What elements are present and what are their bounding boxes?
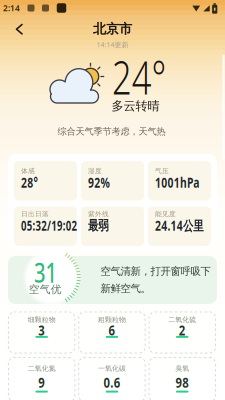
staticText: 臭氧 <box>175 364 189 373</box>
staticText: 空气优 <box>29 283 62 296</box>
staticText: 05:32/19:02 <box>21 217 99 234</box>
staticText: 3 <box>38 321 46 339</box>
staticText: 24° <box>103 47 174 107</box>
staticText: 新鲜空气。 <box>100 282 150 295</box>
button[interactable]: 空气质量 31 空气优 <box>8 256 217 304</box>
staticText: 最弱 <box>88 217 114 234</box>
staticText: 24.14公里 <box>155 217 217 234</box>
staticText: 紫外线 <box>88 210 109 218</box>
staticText: 日出日落 <box>21 210 49 218</box>
staticText: 9 <box>38 374 46 391</box>
staticText: 2:14 <box>3 2 20 13</box>
staticText: 综合天气季节考虑，天气热 <box>57 126 165 137</box>
staticText: 细颗粒物 <box>28 315 56 324</box>
staticText: 气压 <box>155 167 169 175</box>
staticText: 粗颗粒物 <box>98 315 126 324</box>
staticText: 二氧化氮 <box>28 364 56 373</box>
staticText: 31 <box>30 255 60 290</box>
staticText: 6 <box>108 321 116 339</box>
staticText: 98 <box>174 374 190 391</box>
staticText: 2 <box>178 321 186 339</box>
staticText: 二氧化硫 <box>168 315 196 324</box>
button[interactable]: Back <box>6 16 32 42</box>
staticText: 体感 <box>21 167 35 175</box>
staticText: 湿度 <box>88 167 102 175</box>
staticText: 28° <box>21 174 43 191</box>
staticText: 92% <box>88 174 116 191</box>
staticText: 0.6 <box>102 374 122 391</box>
staticText: 一氧化碳 <box>98 364 126 373</box>
staticText: 1001hPa <box>155 174 212 191</box>
staticText: 14:14更新 <box>96 40 128 49</box>
staticText: 多云转晴 <box>111 98 159 114</box>
staticText: 能见度 <box>155 210 176 218</box>
staticText: 空气清新，打开窗呼吸下 <box>100 265 210 278</box>
staticText: 北京市 <box>93 21 132 37</box>
